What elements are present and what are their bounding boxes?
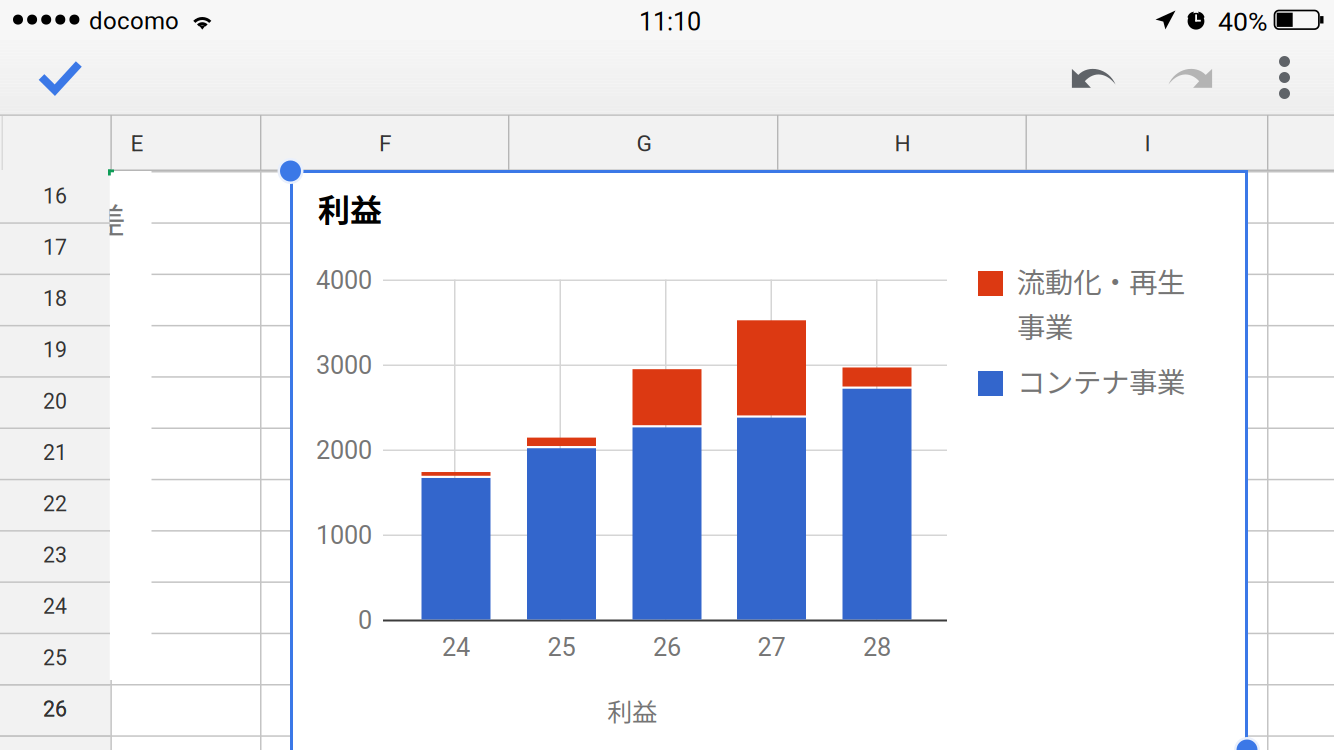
staticText: 25 xyxy=(43,645,67,670)
staticText: 22 xyxy=(43,491,67,516)
staticText: 19 xyxy=(43,338,67,363)
staticText: 23 xyxy=(43,543,67,568)
staticText: 1000 xyxy=(316,520,372,548)
staticText: 2000 xyxy=(316,435,372,463)
staticText: 事業 xyxy=(1017,305,1073,339)
staticText: 差 xyxy=(91,193,121,227)
staticText: 25 xyxy=(547,632,575,658)
staticText: 16 xyxy=(43,184,67,209)
staticText: 17 xyxy=(43,235,67,260)
button[interactable]: Redo xyxy=(0,0,1334,750)
staticText: 利益 xyxy=(607,692,657,720)
staticText: 4000 xyxy=(316,265,372,293)
staticText: 24 xyxy=(442,632,470,658)
staticText: H xyxy=(894,130,910,157)
button[interactable]: More options xyxy=(0,0,1334,750)
staticText: 24 xyxy=(43,594,67,619)
staticText: 20 xyxy=(43,389,67,414)
staticText: F xyxy=(379,130,392,157)
staticText: 16 xyxy=(43,184,67,209)
button[interactable]: Undo xyxy=(0,0,1334,750)
staticText: 21 xyxy=(43,440,67,465)
button[interactable]: Done xyxy=(0,0,1334,750)
staticText: 26 xyxy=(43,697,67,722)
staticText: 26 xyxy=(653,632,681,658)
staticText: 3000 xyxy=(316,350,372,378)
staticText: 0 xyxy=(358,605,372,633)
staticText: 18 xyxy=(43,286,67,311)
staticText: 28 xyxy=(863,632,891,658)
staticText: 19 xyxy=(43,338,67,363)
staticText: 22 xyxy=(43,491,67,516)
staticText: 25 xyxy=(43,645,67,670)
staticText: 流動化・再生 xyxy=(1017,260,1185,294)
staticText: 40% xyxy=(1218,6,1268,32)
staticText: コンテナ事業 xyxy=(1017,360,1185,394)
staticText: 17 xyxy=(43,235,67,260)
staticText: 利益 xyxy=(318,185,382,223)
staticText: 18 xyxy=(43,286,67,311)
staticText: G xyxy=(636,130,651,157)
staticText: I xyxy=(1144,130,1150,157)
staticText: docomo xyxy=(89,7,179,33)
staticText: E xyxy=(130,130,143,157)
staticText: 26 xyxy=(43,697,67,722)
staticText: 11:10 xyxy=(639,7,701,33)
staticText: 23 xyxy=(43,543,67,568)
staticText: 27 xyxy=(757,632,785,658)
staticText: 24 xyxy=(43,594,67,619)
staticText: 20 xyxy=(43,389,67,414)
staticText: 21 xyxy=(43,440,67,465)
